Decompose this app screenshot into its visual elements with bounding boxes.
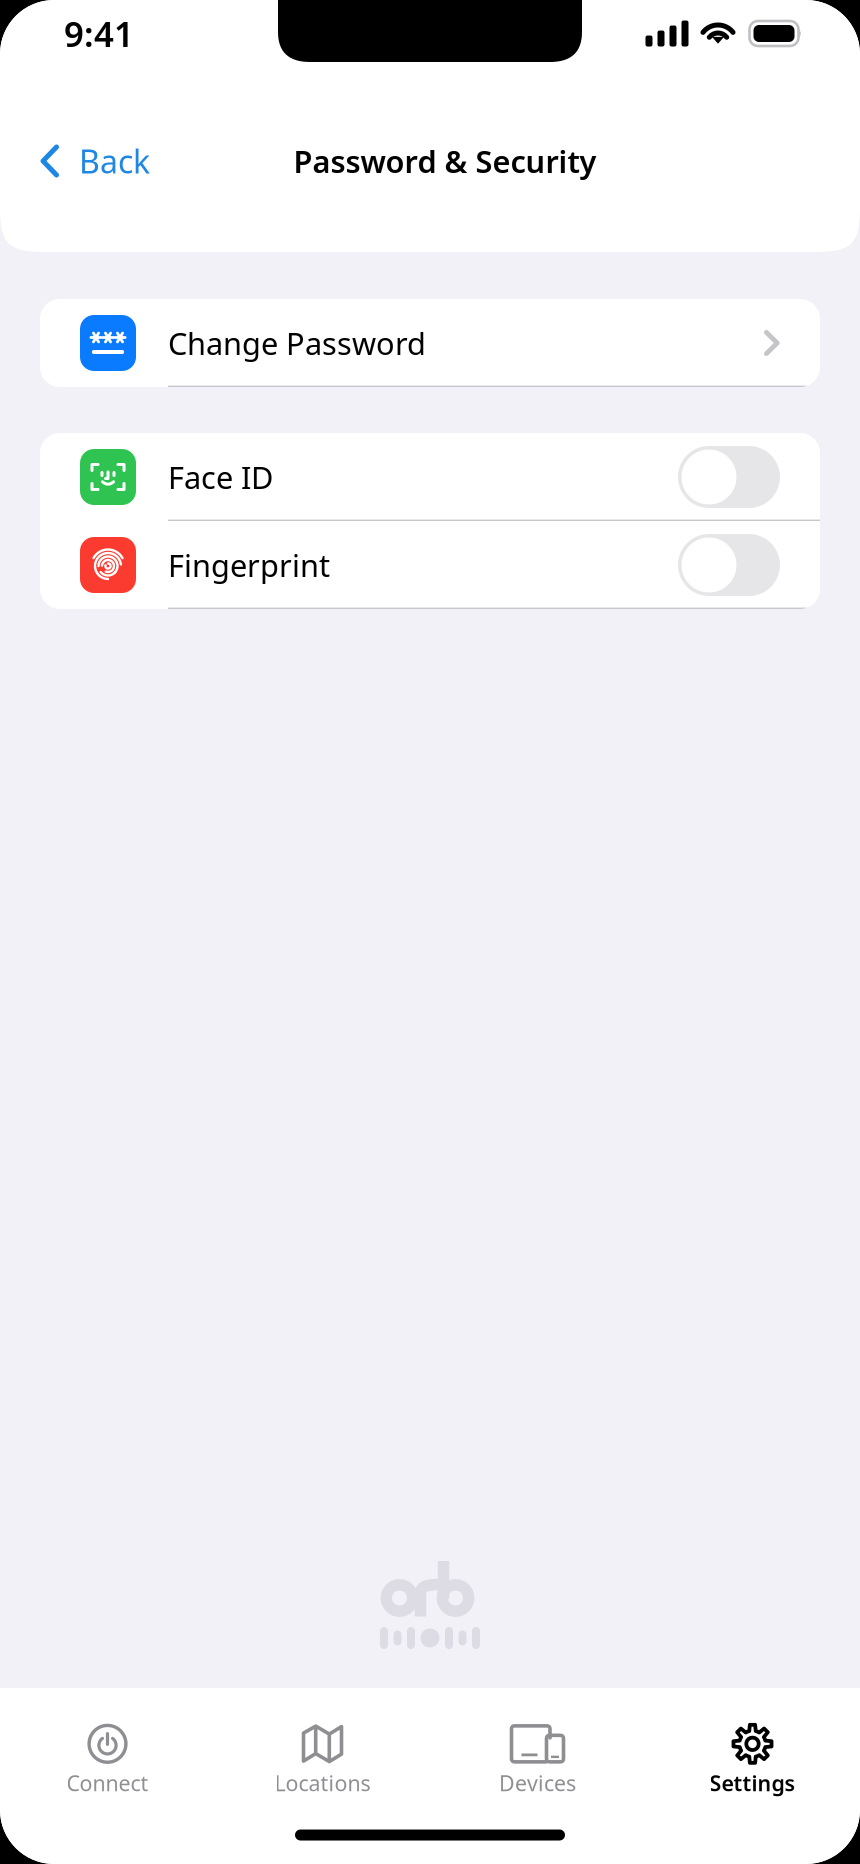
- button[interactable]: Locations: [215, 1689, 430, 1805]
- button[interactable]: Face ID: [40, 433, 820, 521]
- staticText: Locations: [274, 1769, 370, 1797]
- button[interactable]: Fingerprint: [40, 521, 820, 609]
- button[interactable]: Back: [0, 122, 174, 200]
- staticText: 9:41: [64, 10, 134, 56]
- button[interactable]: Change Password: [40, 299, 820, 387]
- button[interactable]: Connect: [0, 1689, 215, 1805]
- button[interactable]: Devices: [430, 1689, 645, 1805]
- staticText: Devices: [499, 1769, 576, 1797]
- staticText: Password & Security: [293, 141, 596, 181]
- staticText: Settings: [709, 1769, 795, 1797]
- button[interactable]: Settings: [645, 1689, 860, 1805]
- staticText: Face ID: [168, 457, 273, 497]
- staticText: Change Password: [168, 323, 426, 363]
- staticText: Fingerprint: [168, 545, 330, 585]
- staticText: Back: [79, 140, 150, 182]
- staticText: Connect: [66, 1769, 148, 1797]
